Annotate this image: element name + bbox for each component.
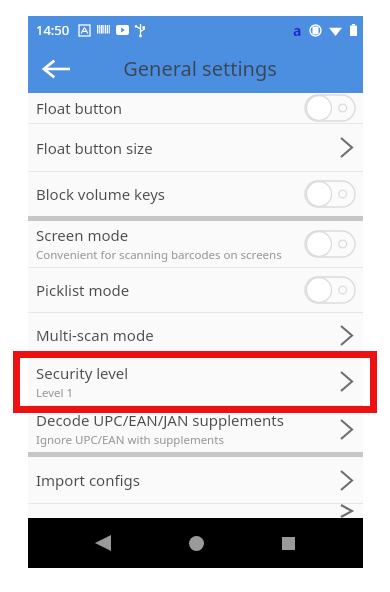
- button[interactable]: Home: [179, 526, 213, 560]
- button[interactable]: Import configs: [28, 457, 363, 503]
- button[interactable]: Multi-scan mode: [28, 313, 363, 357]
- button[interactable]: Float button: [28, 93, 363, 123]
- button[interactable]: Back: [86, 526, 120, 560]
- staticText: Import configs: [36, 470, 140, 490]
- button[interactable]: Screen mode: [28, 221, 363, 267]
- button[interactable]: Float button size: [28, 124, 363, 171]
- staticText: Security level: [36, 363, 129, 383]
- staticText: Screen mode: [36, 225, 129, 245]
- staticText: Float button size: [36, 138, 153, 158]
- staticText: 14:50: [36, 21, 70, 39]
- button[interactable]: Decode UPC/EAN/JAN supplements: [28, 406, 363, 452]
- staticText: Convenient for scanning barcodes on scre…: [36, 247, 282, 263]
- staticText: Decode UPC/EAN/JAN supplements: [36, 410, 284, 430]
- staticText: Block volume keys: [36, 184, 166, 204]
- staticText: Picklist mode: [36, 280, 130, 300]
- staticText: Multi-scan mode: [36, 325, 154, 345]
- button[interactable]: [28, 504, 363, 518]
- staticText: Level 1: [36, 385, 74, 401]
- button[interactable]: Navigate up: [34, 47, 78, 91]
- button[interactable]: Security level: [28, 358, 363, 405]
- staticText: Float button: [36, 98, 123, 118]
- button[interactable]: Picklist mode: [28, 268, 363, 312]
- staticText: General settings: [123, 55, 277, 82]
- button[interactable]: Block volume keys: [28, 172, 363, 216]
- staticText: Ignore UPC/EAN with supplements: [36, 432, 224, 448]
- staticText: a: [293, 21, 302, 40]
- button[interactable]: Recent apps: [271, 526, 305, 560]
